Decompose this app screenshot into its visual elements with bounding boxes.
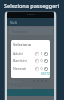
button[interactable]: FATTO: [39, 71, 50, 77]
staticText: Seleziona passeggeri: [13, 42, 50, 47]
staticText: Neonati: [13, 66, 27, 71]
button[interactable]: Aumenta: [44, 59, 48, 63]
button[interactable]: Aumenta: [44, 67, 48, 71]
staticText: Partenza: [12, 29, 27, 34]
button[interactable]: Diminuisci: [35, 52, 39, 56]
staticText: Bambini: [13, 58, 27, 63]
staticText: 1: [39, 51, 44, 56]
button[interactable]: Adulti: [13, 50, 48, 57]
staticText: 0: [39, 58, 44, 63]
staticText: Seleziona passeggeri: [4, 2, 60, 9]
button[interactable]: Aumenta: [44, 52, 48, 56]
button[interactable]: Diminuisci: [35, 67, 39, 71]
staticText: Seleziona data: [9, 85, 33, 90]
button[interactable]: Diminuisci: [35, 59, 39, 63]
staticText: 0: [39, 66, 44, 71]
button[interactable]: Bambini: [13, 57, 48, 64]
staticText: Adulti: [13, 51, 23, 56]
staticText: Voli: [10, 20, 17, 25]
staticText: FATTO: [41, 72, 50, 76]
button[interactable]: Neonati: [13, 65, 48, 72]
